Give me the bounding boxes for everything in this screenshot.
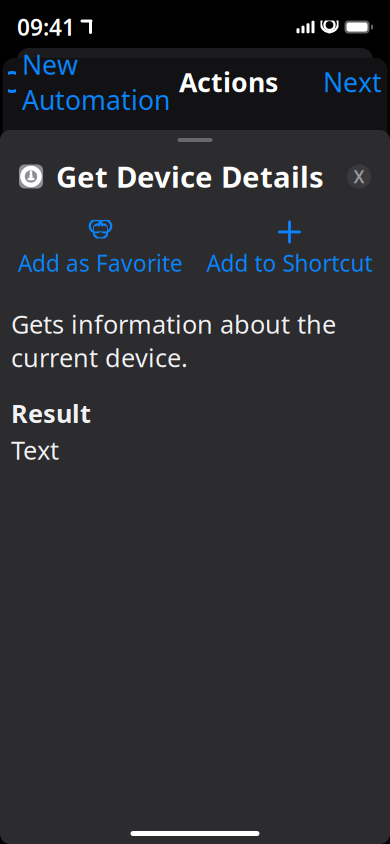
button[interactable]: Add as Favorite — [6, 216, 195, 282]
staticText: Next — [323, 64, 382, 100]
button[interactable]: New Automation — [8, 39, 170, 125]
button[interactable]: Add to Shortcut — [195, 216, 384, 282]
staticText: Text — [11, 433, 59, 467]
button[interactable]: Next — [323, 56, 382, 108]
staticText: X — [353, 165, 364, 188]
button[interactable]: Close — [347, 164, 371, 188]
staticText: Add as Favorite — [18, 248, 183, 278]
staticText: Actions — [179, 64, 278, 100]
staticText: 09:41 — [17, 12, 75, 42]
staticText: New Automation — [22, 47, 170, 117]
staticText: Gets information about the current devic… — [11, 307, 336, 374]
staticText: Result — [11, 396, 91, 430]
staticText: Add to Shortcut — [206, 248, 372, 278]
staticText: Get Device Details — [56, 157, 324, 196]
